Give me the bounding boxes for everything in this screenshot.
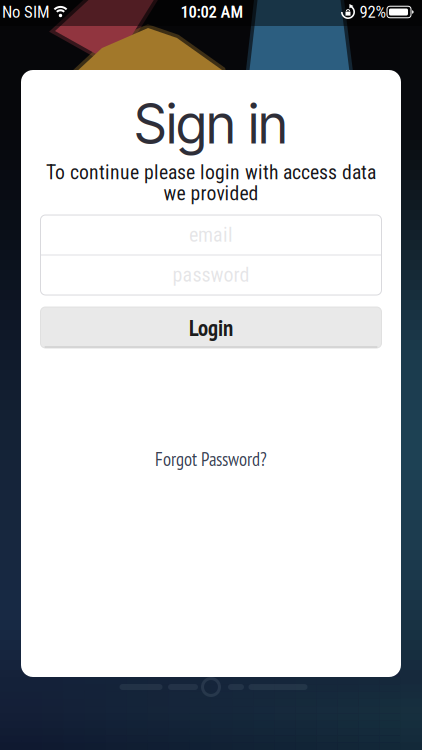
button[interactable]: Forgot Password? — [155, 447, 267, 471]
staticText: Sign in — [134, 92, 287, 156]
staticText: 92% — [359, 2, 386, 22]
staticText: password — [40, 260, 144, 290]
staticText: No SIM — [2, 2, 50, 22]
staticText: email — [189, 223, 233, 247]
staticText: Login — [189, 313, 233, 342]
staticText: To continue please login with access dat… — [46, 161, 376, 184]
staticText: password — [172, 263, 249, 287]
staticText: email — [40, 220, 99, 250]
textField[interactable]: email — [40, 220, 381, 250]
staticText: Forgot Password? — [155, 447, 267, 471]
button[interactable]: Login — [40, 307, 381, 348]
staticText: 10:02 AM — [180, 2, 243, 22]
textField[interactable]: password — [40, 260, 381, 290]
staticText: we provided — [163, 182, 258, 205]
